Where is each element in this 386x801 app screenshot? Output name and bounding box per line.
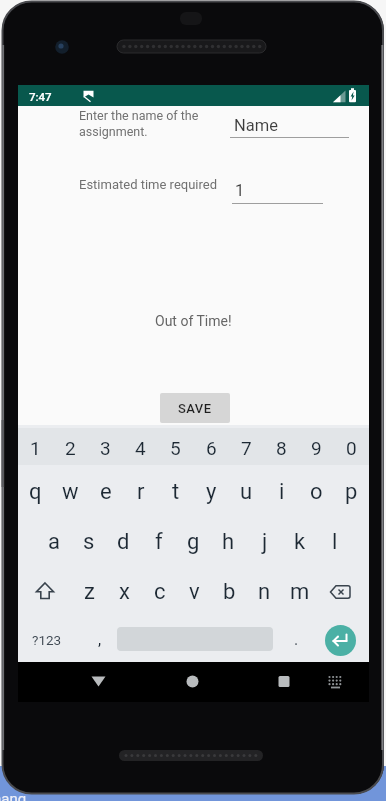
staticText: 7 — [241, 437, 252, 459]
button[interactable]: t — [158, 479, 193, 505]
staticText: i — [279, 479, 285, 505]
staticText: t — [172, 479, 180, 505]
button[interactable]: d — [106, 529, 141, 555]
button[interactable]: y — [194, 479, 229, 505]
button[interactable]: i — [264, 479, 299, 505]
staticText: . — [294, 630, 299, 649]
staticText: 5 — [170, 437, 181, 459]
staticText: q — [29, 479, 42, 505]
staticText: m — [290, 579, 310, 605]
staticText: Name — [234, 116, 278, 135]
staticText: a — [48, 529, 60, 555]
staticText: SAVE — [178, 401, 212, 416]
button[interactable]: u — [229, 479, 264, 505]
staticText: ?123 — [32, 632, 62, 648]
staticText: assignment. — [79, 124, 148, 139]
button[interactable]: m — [282, 579, 317, 605]
button[interactable]: q — [18, 479, 53, 505]
button[interactable]: 5 — [158, 437, 193, 459]
staticText: d — [117, 529, 130, 555]
staticText: 1 — [30, 437, 41, 459]
staticText: r — [137, 479, 145, 505]
staticText: g — [187, 529, 200, 555]
staticText: x — [119, 579, 130, 605]
button[interactable]: n — [247, 579, 282, 605]
button[interactable]: 7 — [229, 437, 264, 459]
button[interactable]: v — [177, 579, 212, 605]
button[interactable]: 8 — [264, 437, 299, 459]
staticText: 1 — [235, 181, 245, 200]
button[interactable]: , — [82, 630, 117, 649]
staticText: Estimated time required — [79, 177, 218, 192]
staticText: f — [155, 529, 163, 555]
staticText: z — [84, 579, 95, 605]
button[interactable]: k — [282, 529, 317, 555]
staticText: 2 — [65, 437, 76, 459]
staticText: y — [206, 479, 217, 505]
button[interactable]: 6 — [194, 437, 229, 459]
button[interactable]: j — [247, 529, 282, 555]
button[interactable]: 0 — [334, 437, 369, 459]
staticText: u — [240, 479, 253, 505]
staticText: b — [223, 579, 236, 605]
button[interactable]: 3 — [88, 437, 123, 459]
button[interactable]: 2 — [53, 437, 88, 459]
button[interactable]: c — [142, 579, 177, 605]
staticText: e — [100, 479, 112, 505]
button[interactable]: g — [176, 529, 211, 555]
button[interactable] — [270, 668, 298, 694]
staticText: w — [62, 479, 79, 505]
button[interactable]: w — [53, 479, 88, 505]
staticText: h — [222, 529, 235, 555]
button[interactable]: o — [299, 479, 334, 505]
staticText: 8 — [276, 437, 287, 459]
staticText: j — [262, 529, 268, 555]
button[interactable]: l — [317, 529, 352, 555]
button[interactable]: a — [36, 529, 71, 555]
staticText: 3 — [100, 437, 111, 459]
staticText: Enter the name of the — [79, 108, 199, 123]
staticText: v — [189, 579, 200, 605]
button[interactable] — [84, 668, 112, 694]
staticText: 7:47 — [29, 90, 52, 103]
button[interactable]: p — [334, 479, 369, 505]
button[interactable]: f — [141, 529, 176, 555]
button[interactable]: s — [71, 529, 106, 555]
staticText: hang — [0, 790, 27, 801]
button[interactable]: Name — [230, 112, 349, 140]
staticText: o — [310, 479, 323, 505]
button[interactable]: SAVE — [160, 393, 230, 423]
button[interactable] — [325, 625, 356, 656]
staticText: 0 — [346, 437, 357, 459]
button[interactable] — [31, 580, 59, 604]
button[interactable]: z — [72, 579, 107, 605]
button[interactable]: r — [123, 479, 158, 505]
button[interactable]: ?123 — [22, 632, 72, 648]
button[interactable]: x — [107, 579, 142, 605]
staticText: s — [83, 529, 95, 555]
button[interactable]: b — [212, 579, 247, 605]
button[interactable]: 1 — [232, 180, 323, 202]
button[interactable]: 4 — [123, 437, 158, 459]
button[interactable] — [328, 580, 356, 604]
staticText: l — [332, 529, 338, 555]
staticText: c — [154, 579, 166, 605]
staticText: , — [98, 630, 102, 649]
staticText: p — [345, 479, 358, 505]
staticText: k — [294, 529, 306, 555]
staticText: n — [258, 579, 271, 605]
staticText: Out of Time! — [155, 313, 232, 329]
staticText: 9 — [311, 437, 322, 459]
staticText: 4 — [135, 437, 146, 459]
button[interactable]: 1 — [18, 437, 53, 459]
button[interactable]: h — [211, 529, 246, 555]
staticText: 6 — [206, 437, 217, 459]
button[interactable]: 9 — [299, 437, 334, 459]
button[interactable] — [178, 668, 206, 694]
button[interactable]: e — [88, 479, 123, 505]
button[interactable]: . — [279, 630, 314, 649]
button[interactable] — [324, 670, 346, 692]
